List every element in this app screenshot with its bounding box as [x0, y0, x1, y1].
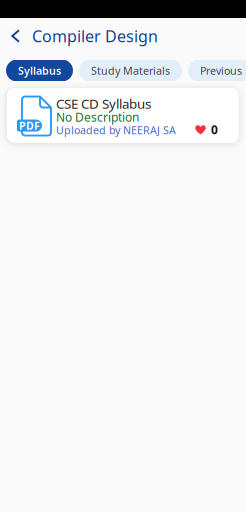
staticText: No Description: [56, 109, 139, 125]
staticText: Compiler Design: [32, 25, 158, 47]
button[interactable]: Study Materials: [79, 59, 182, 81]
staticText: Syllabus: [18, 63, 61, 78]
button[interactable]: Previous Papers: [188, 59, 246, 81]
button[interactable]: Back: [6, 21, 32, 51]
staticText: CSE CD Syllabus: [56, 95, 151, 112]
button[interactable]: Like: [192, 119, 221, 139]
button[interactable]: Syllabus: [6, 59, 73, 81]
button[interactable]: PDF: [7, 88, 239, 143]
staticText: Study Materials: [91, 63, 170, 78]
staticText: 0: [211, 121, 218, 137]
staticText: Uploaded by NEERAJ SA: [56, 123, 176, 137]
staticText: Previous Papers: [200, 63, 246, 78]
staticText: PDF: [19, 118, 40, 133]
